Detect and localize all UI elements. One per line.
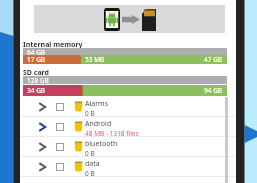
staticText: 48 MB - 1318 files: [85, 129, 139, 138]
staticText: 47 GB: [204, 55, 223, 64]
staticText: 0 B: [85, 149, 95, 158]
button[interactable]: Expand folder: [20, 157, 236, 177]
staticText: Alarms: [85, 99, 108, 109]
other: Expand folder: [38, 122, 47, 132]
staticText: 64 GB: [27, 48, 46, 55]
button[interactable]: [34, 5, 225, 33]
button[interactable]: Expand folder: [20, 137, 236, 157]
other: Expand folder: [38, 102, 47, 112]
staticText: 94 GB: [204, 86, 223, 95]
staticText: SD card: [23, 68, 50, 78]
other: Expand folder: [38, 142, 47, 152]
staticText: data: [85, 159, 100, 169]
staticText: Android: [85, 119, 112, 129]
staticText: 128 GB: [27, 76, 49, 84]
staticText: 34 GB: [27, 86, 46, 95]
staticText: 0 B: [85, 109, 95, 118]
staticText: 17 GB: [27, 55, 46, 64]
staticText: 0 B: [85, 169, 95, 178]
button[interactable]: Expand folder: [20, 117, 236, 137]
staticText: 53 MB: [85, 55, 105, 64]
other: Expand folder: [38, 162, 47, 172]
staticText: Internal memory: [23, 40, 83, 50]
button[interactable]: Expand folder: [20, 97, 236, 117]
staticText: bluetooth: [85, 139, 118, 149]
